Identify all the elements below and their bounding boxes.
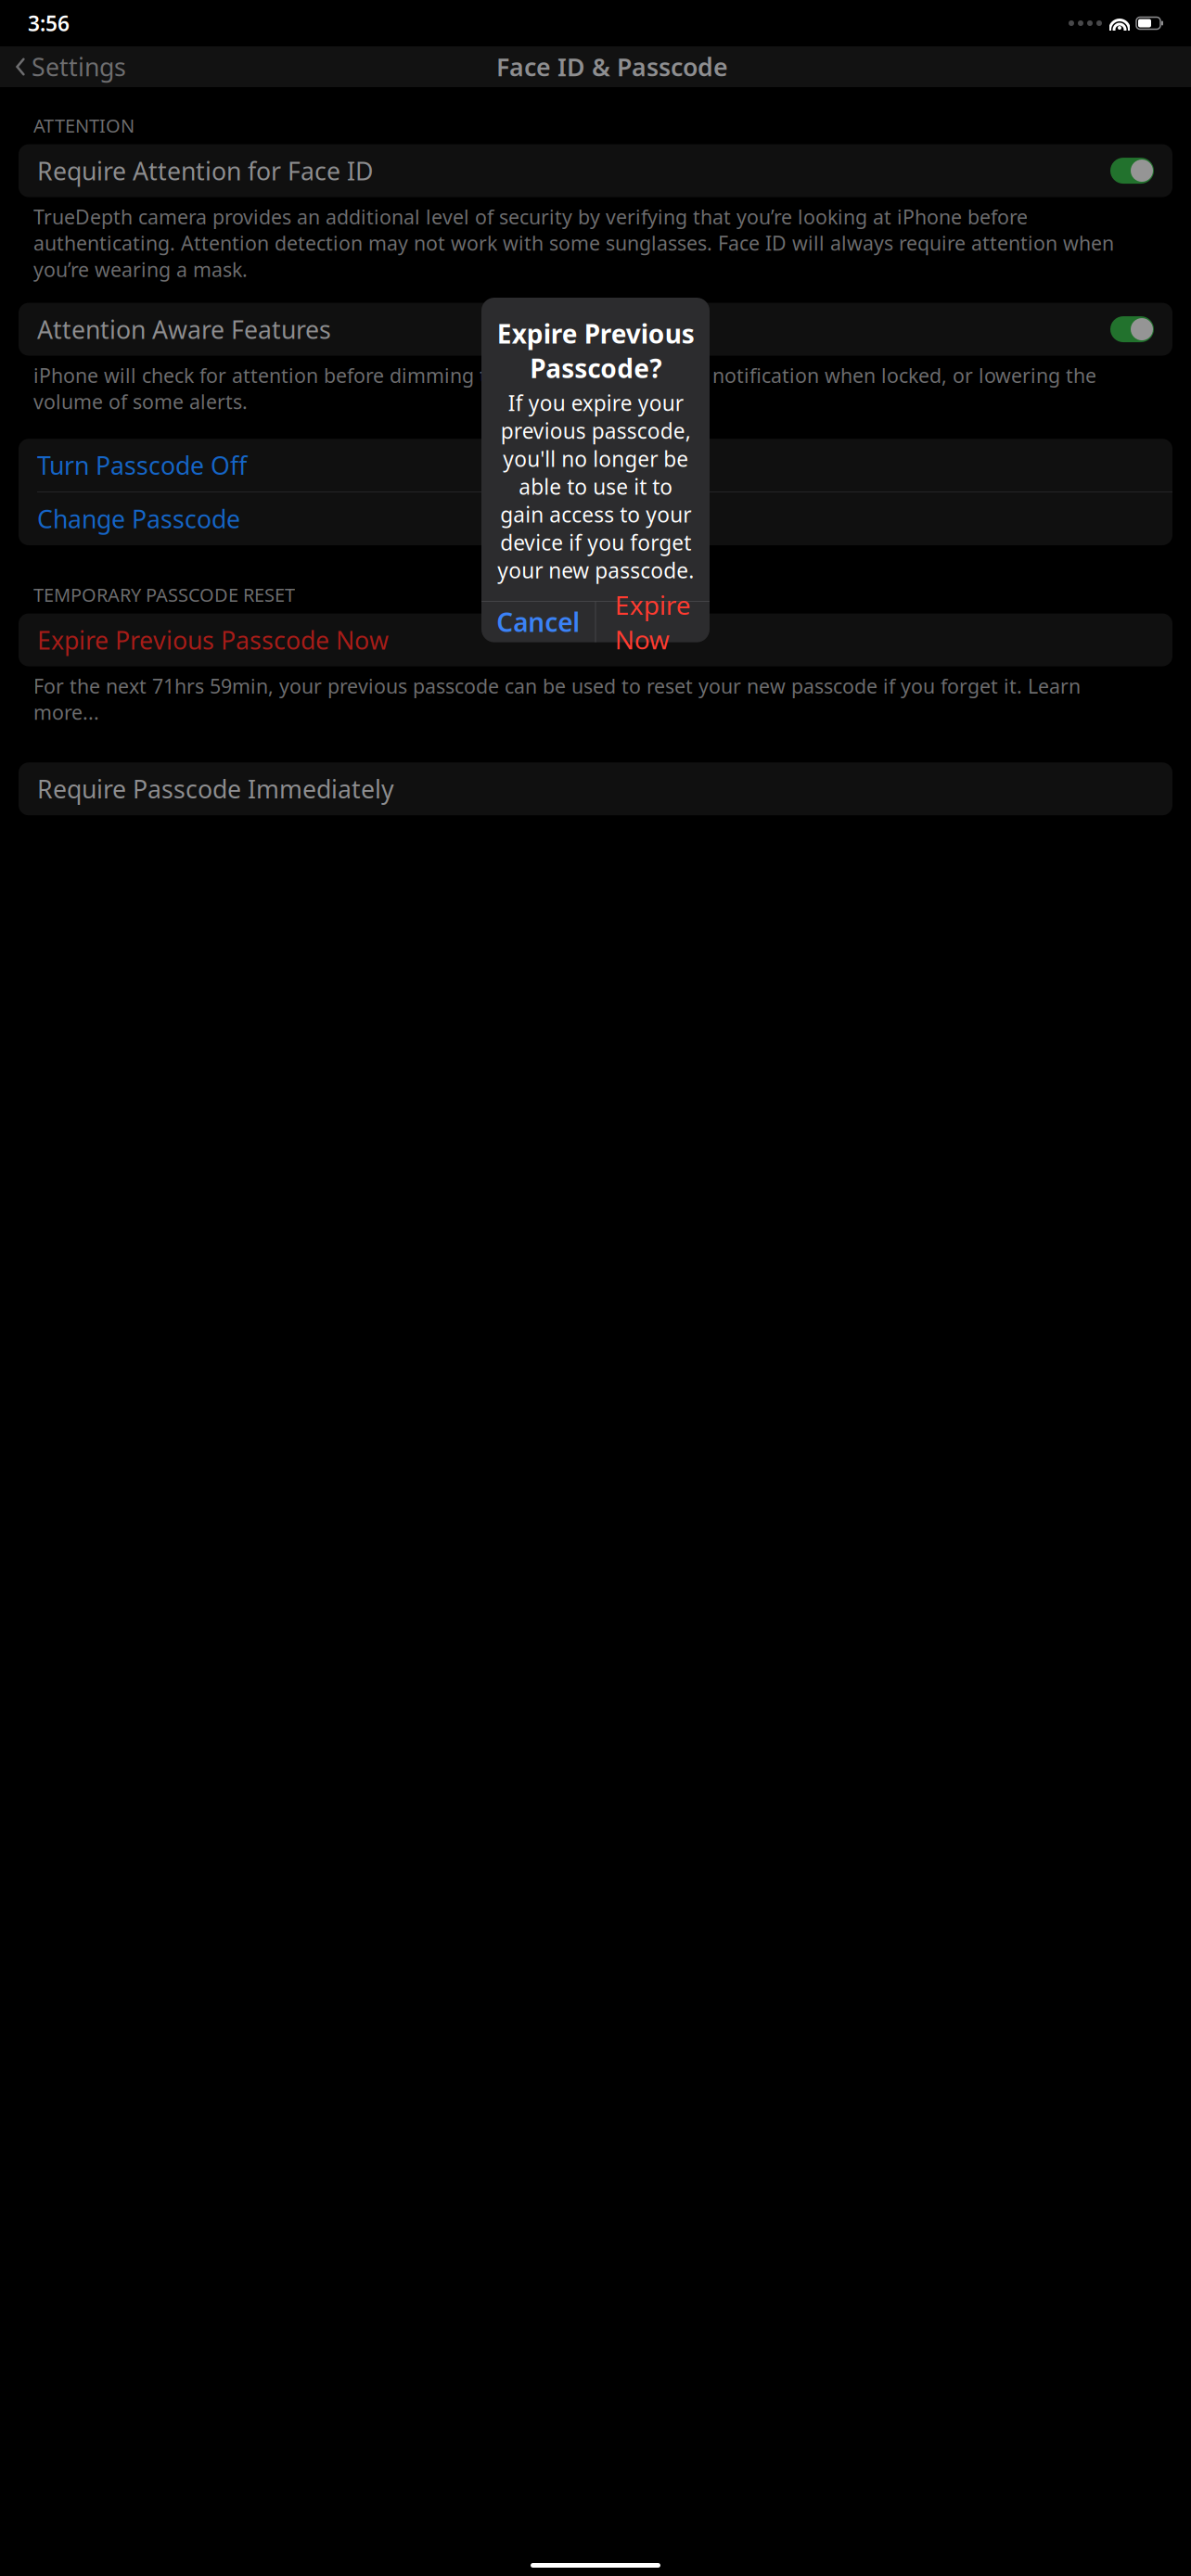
staticText: Require Attention for Face ID [37,154,373,187]
staticText: Expire Previous Passcode Now [37,624,389,656]
staticText: Expire Now [615,587,691,656]
staticText: iPhone will check for attention before d… [33,362,1096,415]
staticText: Require Passcode Immediately [37,772,394,805]
staticText: Change Passcode [37,502,240,535]
button[interactable]: Change Passcode [19,492,1172,545]
button[interactable]: Require Passcode Immediately [19,762,1172,815]
button[interactable]: Settings [0,43,126,91]
staticText: Turn Passcode Off [37,449,247,482]
staticText: 3:56 [28,9,70,37]
staticText: Cancel [497,605,580,639]
staticText: Expire Previous Passcode? [497,316,694,385]
staticText: Face ID & Passcode [496,50,728,83]
staticText: TEMPORARY PASSCODE RESET [33,582,295,607]
button[interactable]: Require Attention for Face ID [19,144,1172,197]
staticText: Attention Aware Features [37,313,331,346]
staticText: TrueDepth camera provides an additional … [33,204,1114,282]
staticText: ATTENTION [33,113,134,138]
staticText: Settings [32,50,126,83]
button[interactable]: Attention Aware Features [19,303,1172,356]
staticText: If you expire your previous passcode, yo… [497,389,694,584]
button[interactable]: Cancel [481,602,595,642]
button[interactable]: Expire Previous Passcode Now [19,613,1172,666]
staticText: For the next 71hrs 59min, your previous … [33,673,1081,725]
button[interactable]: Expire Now [596,602,710,642]
button[interactable]: Turn Passcode Off [19,439,1172,492]
